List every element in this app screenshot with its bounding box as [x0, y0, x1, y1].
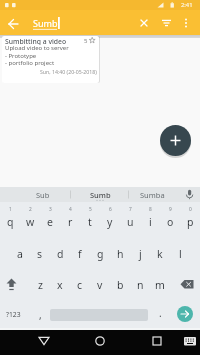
- button[interactable]: [147, 332, 167, 350]
- button[interactable]: [137, 16, 151, 30]
- staticText: c: [77, 278, 83, 292]
- staticText: l: [179, 247, 182, 261]
- staticText: q: [7, 215, 14, 229]
- button[interactable]: z: [30, 276, 50, 293]
- button[interactable]: t: [80, 212, 100, 231]
- staticText: f: [78, 247, 82, 261]
- staticText: 2: [29, 206, 32, 213]
- staticText: 5: [89, 206, 92, 213]
- button[interactable]: c: [70, 276, 90, 293]
- staticText: a: [17, 247, 23, 261]
- staticText: 0: [189, 206, 192, 213]
- button[interactable]: n: [130, 276, 150, 293]
- staticText: b: [117, 278, 124, 292]
- staticText: e: [47, 215, 53, 229]
- staticText: Sumba: [140, 190, 165, 200]
- button[interactable]: [177, 306, 193, 322]
- staticText: 5: [84, 37, 88, 44]
- staticText: 9: [169, 206, 172, 213]
- button[interactable]: f: [70, 245, 90, 262]
- staticText: s: [37, 247, 43, 261]
- staticText: r: [68, 215, 73, 229]
- button[interactable]: .: [150, 305, 170, 320]
- button[interactable]: Sumb: [77, 189, 123, 201]
- staticText: p: [187, 215, 194, 229]
- button[interactable]: [2, 276, 21, 293]
- button[interactable]: x: [50, 276, 70, 293]
- button[interactable]: h: [110, 245, 130, 262]
- button[interactable]: a: [10, 245, 30, 262]
- button[interactable]: p: [180, 212, 200, 231]
- button[interactable]: i: [140, 212, 160, 231]
- button[interactable]: [159, 16, 174, 30]
- button[interactable]: [180, 16, 192, 30]
- button[interactable]: b: [110, 276, 130, 293]
- button[interactable]: u: [120, 212, 140, 231]
- button[interactable]: e: [40, 212, 60, 231]
- button[interactable]: o: [160, 212, 180, 231]
- button[interactable]: [160, 125, 191, 156]
- staticText: 6: [109, 206, 112, 213]
- staticText: v: [97, 278, 103, 292]
- staticText: 3: [49, 206, 52, 213]
- staticText: y: [107, 215, 113, 229]
- staticText: j: [139, 247, 142, 261]
- staticText: d: [57, 247, 64, 261]
- staticText: u: [127, 215, 134, 229]
- button[interactable]: [182, 333, 198, 349]
- button[interactable]: r: [60, 212, 80, 231]
- staticText: i: [149, 215, 152, 229]
- button[interactable]: [2, 36, 99, 83]
- button[interactable]: l: [170, 245, 190, 262]
- button[interactable]: w: [20, 212, 40, 231]
- staticText: m: [155, 278, 165, 292]
- staticText: .: [159, 306, 162, 320]
- button[interactable]: [4, 14, 22, 30]
- button[interactable]: ,: [30, 307, 50, 322]
- button[interactable]: g: [90, 245, 110, 262]
- button[interactable]: [34, 332, 54, 350]
- staticText: o: [167, 215, 174, 229]
- button[interactable]: y: [100, 212, 120, 231]
- staticText: Sun, 14:40 (20-05-2018): [40, 68, 97, 75]
- staticText: Sub: [36, 190, 50, 200]
- button[interactable]: j: [130, 245, 150, 262]
- button[interactable]: d: [50, 245, 70, 262]
- staticText: w: [26, 215, 35, 229]
- button[interactable]: ?123: [2, 307, 24, 322]
- staticText: k: [157, 247, 163, 261]
- staticText: z: [38, 278, 43, 292]
- staticText: Sumb: [33, 17, 58, 29]
- button[interactable]: [178, 276, 197, 293]
- staticText: ,: [39, 308, 42, 322]
- staticText: Upload video to server: [5, 44, 69, 51]
- staticText: - portfolio project: [5, 59, 55, 66]
- button[interactable]: q: [0, 212, 20, 231]
- staticText: ?123: [6, 310, 21, 319]
- staticText: h: [117, 247, 124, 261]
- staticText: - Prototype: [5, 52, 37, 59]
- staticText: Sumbitting a video: [5, 37, 67, 45]
- staticText: n: [137, 278, 144, 292]
- button[interactable]: k: [150, 245, 170, 262]
- button[interactable]: v: [90, 276, 110, 293]
- button[interactable]: Sub: [20, 189, 66, 201]
- staticText: t: [88, 215, 92, 229]
- button[interactable]: Sumba: [129, 189, 175, 201]
- staticText: Sumb: [90, 190, 111, 200]
- staticText: 4: [69, 206, 72, 213]
- button[interactable]: m: [150, 276, 170, 293]
- staticText: 1: [9, 206, 12, 213]
- staticText: g: [97, 247, 104, 261]
- button[interactable]: [90, 332, 110, 350]
- button[interactable]: s: [30, 245, 50, 262]
- staticText: 8: [149, 206, 152, 213]
- staticText: x: [57, 278, 63, 292]
- staticText: 7: [129, 206, 132, 213]
- staticText: 2:41: [181, 1, 193, 9]
